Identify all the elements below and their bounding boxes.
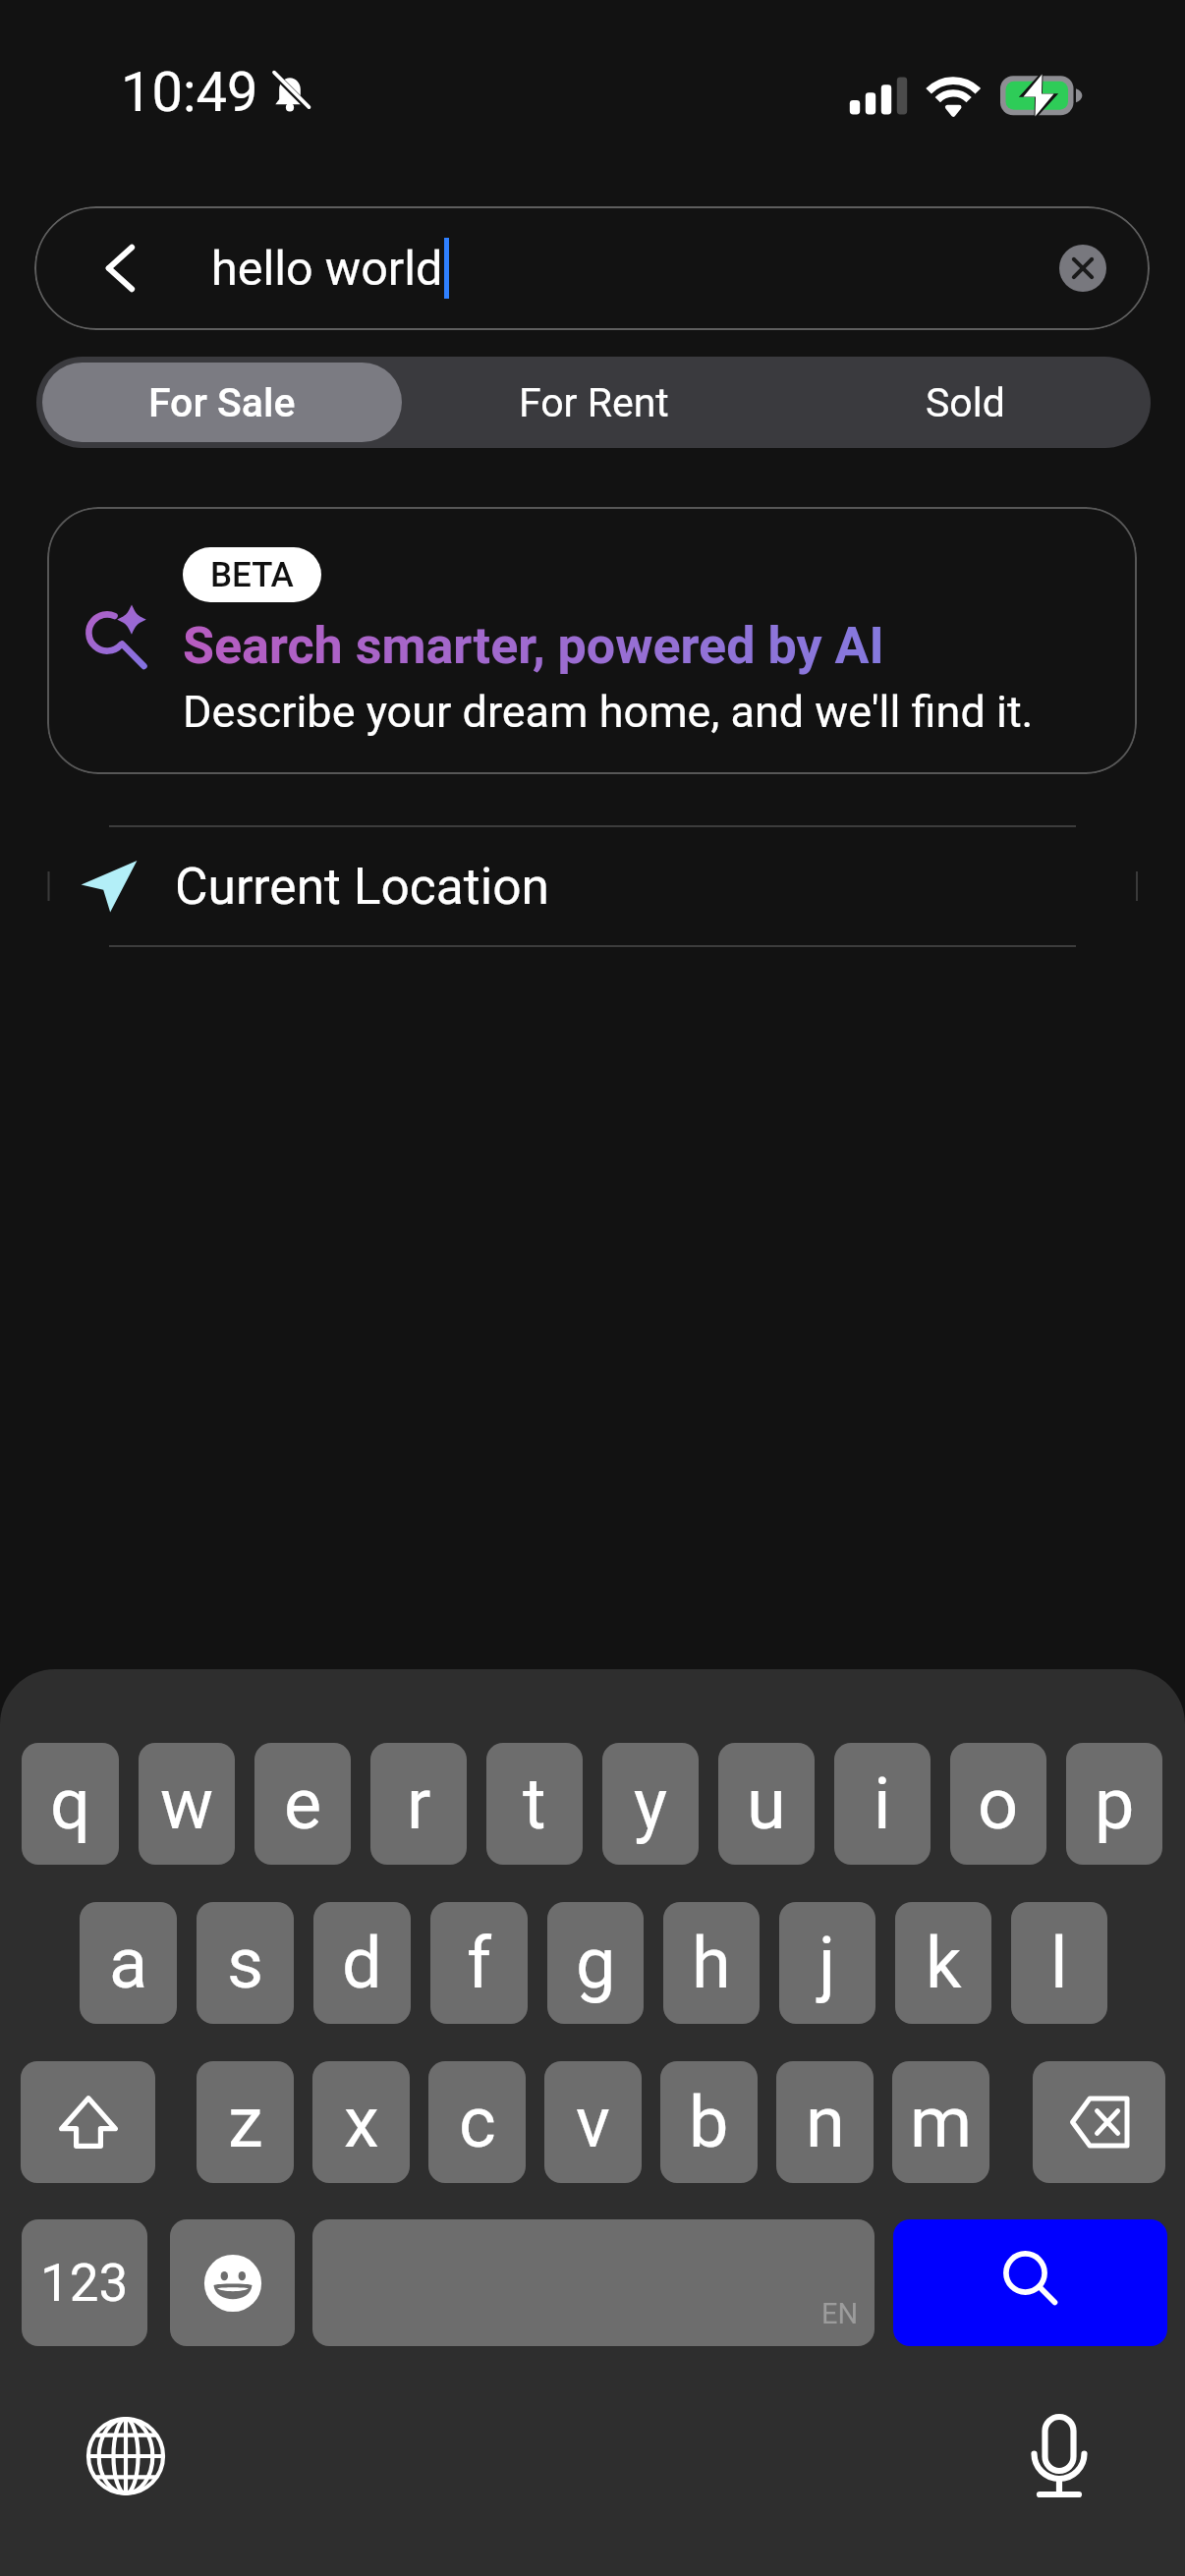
- button[interactable]: Back: [34, 206, 1150, 330]
- staticText: t: [523, 1763, 546, 1845]
- staticText: z: [228, 2081, 263, 2163]
- button[interactable]: l: [1011, 1902, 1107, 2024]
- button[interactable]: i: [834, 1743, 931, 1865]
- button[interactable]: c: [428, 2061, 526, 2183]
- staticText: d: [342, 1922, 382, 2004]
- button[interactable]: p: [1066, 1743, 1162, 1865]
- button[interactable]: o: [950, 1743, 1046, 1865]
- staticText: For Rent: [519, 379, 669, 426]
- staticText: u: [747, 1763, 786, 1845]
- button[interactable]: z: [197, 2061, 294, 2183]
- button[interactable]: Emoji: [170, 2219, 295, 2346]
- button[interactable]: d: [313, 1902, 411, 2024]
- staticText: p: [1095, 1763, 1135, 1845]
- staticText: e: [284, 1763, 322, 1845]
- staticText: Search smarter, powered by AI: [183, 616, 884, 676]
- button[interactable]: x: [312, 2061, 410, 2183]
- staticText: i: [874, 1763, 891, 1845]
- button[interactable]: Voice input: [1028, 2417, 1106, 2495]
- button[interactable]: Change language: [86, 2417, 165, 2495]
- button[interactable]: q: [22, 1743, 119, 1865]
- button[interactable]: h: [663, 1902, 760, 2024]
- staticText: k: [926, 1922, 962, 2004]
- staticText: 10:49: [121, 60, 258, 125]
- button[interactable]: For Sale: [42, 363, 402, 442]
- button[interactable]: f: [430, 1902, 528, 2024]
- button[interactable]: u: [718, 1743, 815, 1865]
- button[interactable]: k: [895, 1902, 991, 2024]
- staticText: Describe your dream home, and we'll find…: [183, 686, 1034, 738]
- staticText: n: [806, 2081, 845, 2163]
- staticText: j: [818, 1922, 836, 2004]
- button[interactable]: y: [602, 1743, 699, 1865]
- button[interactable]: b: [660, 2061, 758, 2183]
- button[interactable]: Clear search: [1059, 245, 1106, 292]
- staticText: s: [227, 1922, 264, 2004]
- staticText: BETA: [210, 555, 294, 595]
- staticText: h: [692, 1922, 731, 2004]
- button[interactable]: Back: [93, 241, 148, 296]
- staticText: a: [109, 1922, 148, 2004]
- staticText: y: [634, 1763, 668, 1845]
- button[interactable]: Current Location: [0, 827, 1185, 945]
- button[interactable]: m: [892, 2061, 989, 2183]
- staticText: b: [689, 2081, 729, 2163]
- button[interactable]: n: [776, 2061, 874, 2183]
- button[interactable]: g: [547, 1902, 644, 2024]
- staticText: o: [978, 1763, 1019, 1845]
- button[interactable]: For Rent: [414, 363, 773, 442]
- button[interactable]: e: [254, 1743, 351, 1865]
- staticText: For Sale: [148, 379, 296, 426]
- staticText: q: [50, 1763, 90, 1845]
- staticText: v: [576, 2081, 610, 2163]
- staticText: x: [344, 2081, 379, 2163]
- staticText: Sold: [926, 379, 1005, 426]
- button[interactable]: Space: [312, 2219, 875, 2346]
- staticText: hello world: [211, 241, 443, 297]
- button[interactable]: BETA: [47, 507, 1137, 774]
- button[interactable]: a: [80, 1902, 177, 2024]
- staticText: l: [1050, 1922, 1068, 2004]
- staticText: 123: [40, 2253, 129, 2314]
- staticText: r: [407, 1763, 431, 1845]
- staticText: w: [160, 1763, 214, 1845]
- button[interactable]: Search: [893, 2219, 1167, 2346]
- button[interactable]: j: [779, 1902, 875, 2024]
- staticText: g: [576, 1922, 616, 2004]
- button[interactable]: 123: [22, 2219, 147, 2346]
- staticText: EN: [821, 2297, 859, 2330]
- staticText: f: [467, 1922, 492, 2004]
- button[interactable]: t: [486, 1743, 583, 1865]
- button[interactable]: Backspace: [1033, 2061, 1165, 2183]
- button[interactable]: s: [197, 1902, 294, 2024]
- button[interactable]: Sold: [785, 363, 1145, 442]
- staticText: m: [910, 2081, 973, 2163]
- button[interactable]: r: [370, 1743, 467, 1865]
- staticText: Current Location: [175, 857, 549, 916]
- staticText: c: [459, 2081, 496, 2163]
- button[interactable]: v: [544, 2061, 642, 2183]
- button[interactable]: Shift: [21, 2061, 155, 2183]
- button[interactable]: w: [139, 1743, 235, 1865]
